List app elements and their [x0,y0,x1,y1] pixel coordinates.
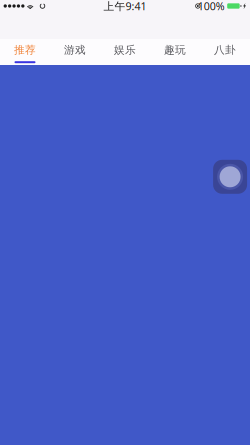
staticText: 趣玩 [164,43,186,56]
button[interactable]: Assistant [213,160,247,194]
staticText: 游戏 [64,43,86,56]
button[interactable]: 推荐 [0,37,50,67]
staticText: 100% [198,0,225,13]
button[interactable]: 八卦 [200,37,250,67]
staticText: 娱乐 [114,43,136,56]
staticText: 上午9:41 [103,0,146,13]
staticText: 推荐 [14,43,36,56]
button[interactable]: 娱乐 [100,37,150,67]
button[interactable]: 趣玩 [150,37,200,67]
staticText: 八卦 [214,43,236,56]
button[interactable]: 游戏 [50,37,100,67]
